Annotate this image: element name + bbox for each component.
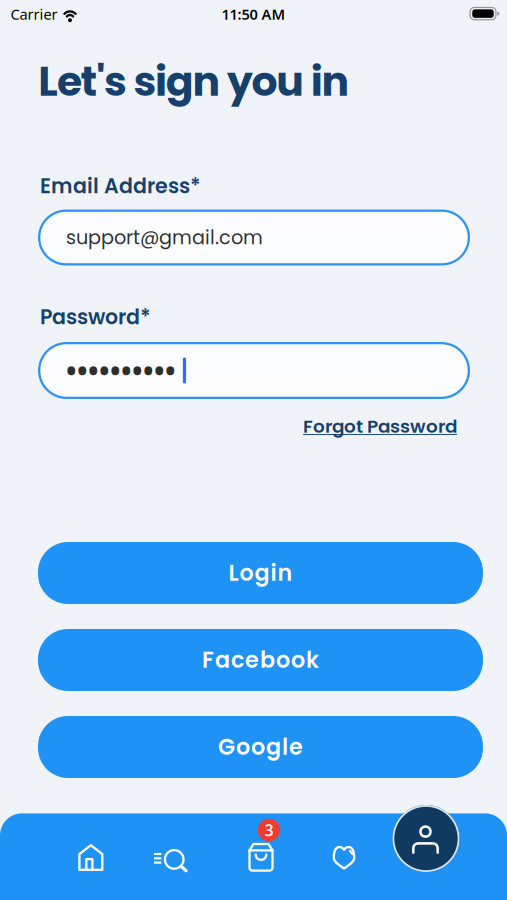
staticText: Let's sign you in	[38, 53, 349, 110]
secureTextField[interactable]: password12	[66, 352, 470, 389]
staticText: 3	[264, 819, 273, 841]
button[interactable]: Cart	[235, 817, 287, 881]
button[interactable]: Facebook	[38, 629, 483, 691]
staticText: Email Address*	[40, 172, 201, 200]
staticText: ••••••••••	[66, 352, 176, 389]
button[interactable]: Login	[38, 542, 483, 604]
button[interactable]: Search	[146, 834, 194, 882]
staticText: L o g i n	[228, 557, 292, 589]
button[interactable]: Google	[38, 716, 483, 778]
staticText: Password*	[40, 303, 151, 331]
staticText: 11:50 AM	[221, 4, 285, 24]
staticText: Forgot Password	[303, 413, 457, 439]
staticText: Carrier	[10, 4, 57, 24]
button[interactable]: Home	[67, 833, 115, 881]
staticText: support@gmail.com	[66, 224, 263, 251]
button[interactable]: Profile	[392, 805, 459, 872]
button[interactable]: Forgot Password	[303, 413, 457, 439]
staticText: F a c e b o o k	[202, 644, 319, 676]
staticText: G o o g l e	[218, 731, 303, 763]
button[interactable]: Favorites	[320, 834, 368, 882]
textField[interactable]: support@gmail.com	[66, 224, 470, 251]
